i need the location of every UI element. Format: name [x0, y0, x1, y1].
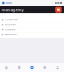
staticText: Help and support	[5, 34, 17, 35]
staticText: Make a payment	[5, 24, 16, 26]
button[interactable]: Home	[0, 63, 13, 72]
button[interactable]: Pay	[26, 63, 38, 72]
staticText: Usage this month	[5, 29, 16, 31]
button[interactable]: Account	[55, 7, 62, 13]
staticText: managemy	[1, 7, 23, 12]
button[interactable]: Help and support	[0, 32, 64, 37]
button[interactable]: Bills	[13, 63, 26, 72]
button[interactable]: Account	[51, 63, 64, 72]
staticText: Account overview	[5, 19, 18, 21]
button[interactable]: Make a payment	[0, 22, 64, 27]
button[interactable]: Offers	[38, 63, 51, 72]
button[interactable]: Usage this month	[0, 27, 64, 32]
button[interactable]: Account overview	[0, 17, 64, 22]
